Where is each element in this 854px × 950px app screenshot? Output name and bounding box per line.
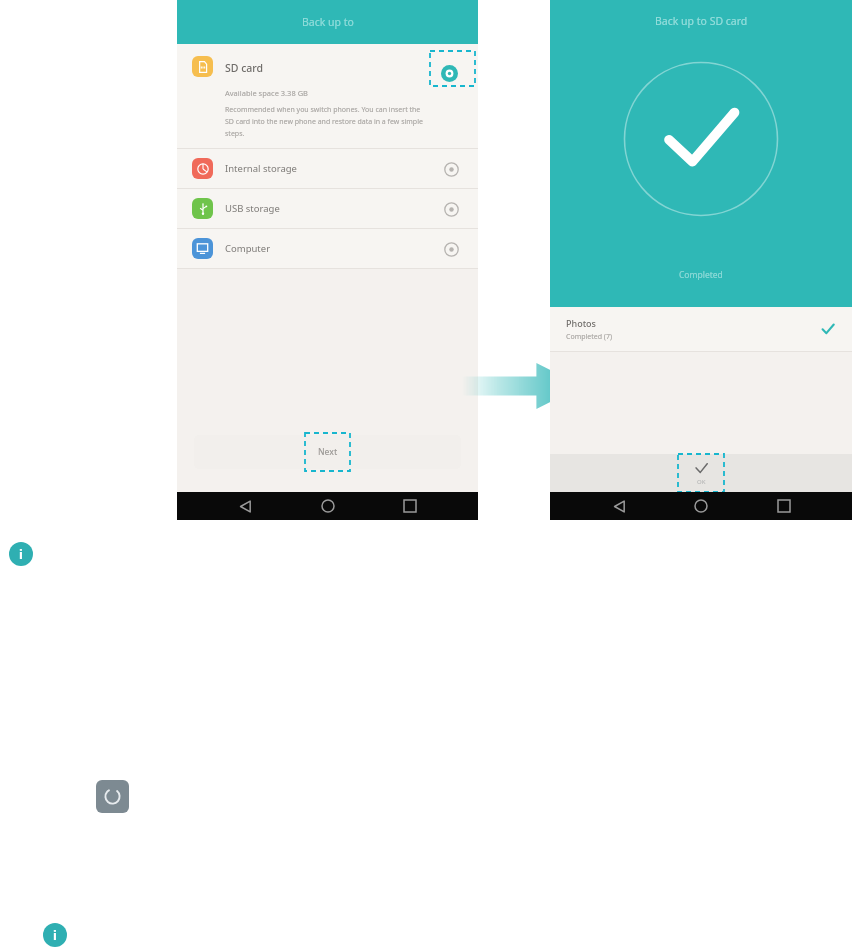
button[interactable]: Home: [314, 492, 342, 520]
button[interactable]: Back: [231, 492, 259, 520]
button[interactable]: Recents: [770, 492, 798, 520]
button[interactable]: Computer: [177, 229, 478, 268]
staticText: Photos: [566, 317, 596, 329]
staticText: Recommended when you switch phones. You …: [225, 105, 421, 115]
staticText: SD card: [225, 61, 264, 75]
staticText: Back up to SD card: [655, 14, 748, 28]
staticText: USB storage: [225, 202, 280, 215]
staticText: Next: [318, 446, 338, 458]
staticText: Internal storage: [225, 162, 297, 175]
staticText: Completed: [679, 269, 723, 281]
staticText: Back up to: [302, 15, 354, 29]
button[interactable]: Recents: [396, 492, 424, 520]
staticText: Computer: [225, 242, 271, 255]
staticText: SD card into the new phone and restore d…: [225, 117, 423, 127]
button[interactable]: Internal storage: [177, 149, 478, 188]
button[interactable]: Back: [605, 492, 633, 520]
staticText: Completed (7): [566, 332, 613, 342]
button[interactable]: Done: [678, 454, 724, 492]
button[interactable]: Next: [194, 435, 461, 469]
staticText: i: [53, 926, 57, 944]
button[interactable]: Photos: [550, 307, 852, 351]
staticText: steps.: [225, 129, 245, 139]
button[interactable]: Home: [687, 492, 715, 520]
button[interactable]: Select SD card: [434, 58, 464, 88]
staticText: Available space 3.38 GB: [225, 88, 308, 98]
staticText: i: [19, 545, 23, 563]
button[interactable]: SD card: [177, 44, 478, 148]
staticText: OK: [697, 478, 706, 486]
button[interactable]: USB storage: [177, 189, 478, 228]
